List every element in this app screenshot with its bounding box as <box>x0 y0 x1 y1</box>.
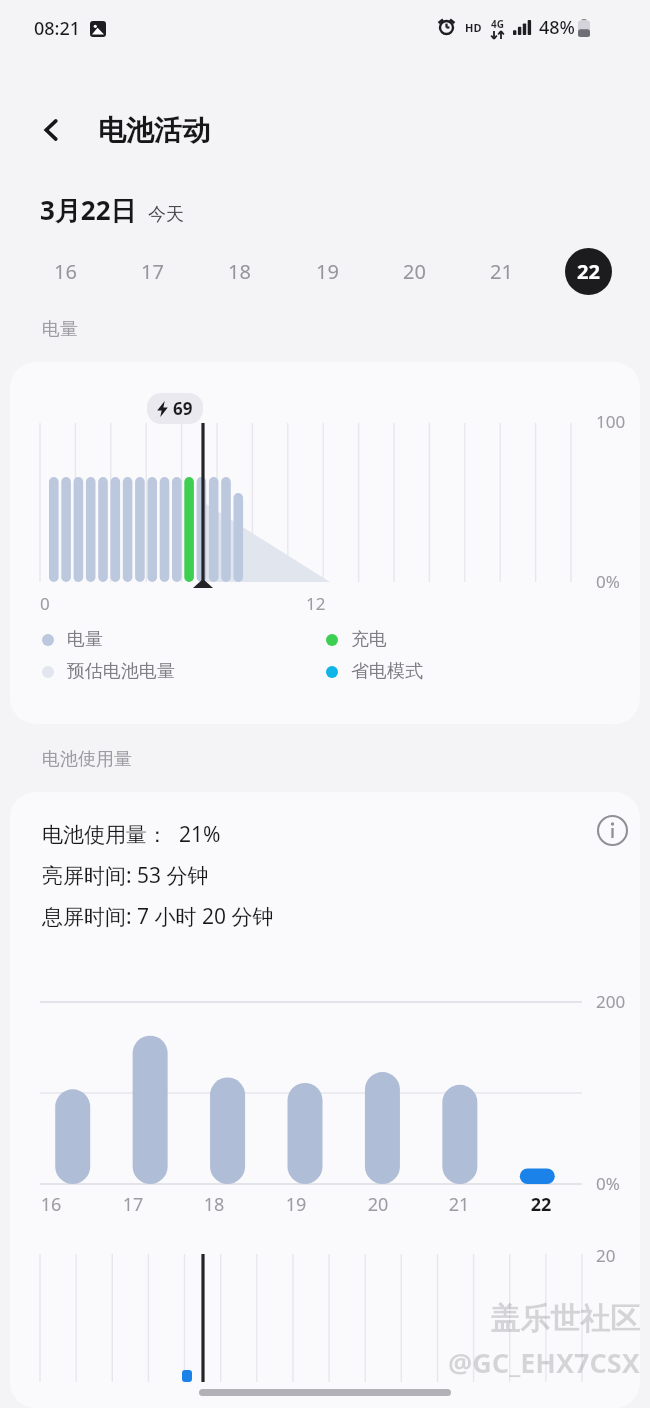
button[interactable]: 21 <box>478 248 525 295</box>
staticText: 17 <box>116 1192 150 1217</box>
staticText: 19 <box>316 258 339 285</box>
staticText: 充电 <box>351 628 387 651</box>
staticText: 20 <box>361 1192 395 1217</box>
staticText: 电池使用量 <box>42 748 132 771</box>
button[interactable]: 17 <box>129 248 176 295</box>
button[interactable]: 返回 <box>26 104 78 156</box>
staticText: 0% <box>596 1172 620 1195</box>
button[interactable]: 22 <box>565 248 612 295</box>
staticText: 20 <box>596 1244 616 1267</box>
staticText: 12 <box>306 592 326 615</box>
staticText: 20 <box>403 258 426 285</box>
staticText: 电池活动 <box>98 113 210 148</box>
button[interactable]: 信息 <box>588 806 636 854</box>
button[interactable]: 20 <box>391 248 438 295</box>
staticText: 100 <box>596 410 626 433</box>
staticText: 16 <box>54 258 77 285</box>
staticText: 19 <box>279 1192 313 1217</box>
staticText: 盖乐世社区 <box>490 1300 640 1338</box>
button[interactable]: 16 <box>42 248 89 295</box>
staticText: 亮屏时间: 53 分钟 <box>42 861 209 890</box>
staticText: 69 <box>173 397 193 420</box>
button[interactable]: 69 <box>10 362 640 724</box>
staticText: 息屏时间: 7 小时 20 分钟 <box>42 902 274 931</box>
staticText: 22 <box>577 258 600 285</box>
button[interactable]: 18 <box>216 248 263 295</box>
staticText: 08:21 <box>34 16 81 41</box>
staticText: 今天 <box>148 203 184 226</box>
staticText: 21 <box>490 258 513 285</box>
staticText: 4G <box>491 17 504 31</box>
staticText: 电池使用量： 21% <box>42 820 221 849</box>
staticText: 18 <box>197 1192 231 1217</box>
staticText: 预估电池电量 <box>67 660 175 683</box>
staticText: 22 <box>524 1192 558 1217</box>
staticText: 21 <box>442 1192 476 1217</box>
staticText: 电量 <box>67 628 103 651</box>
staticText: 省电模式 <box>351 660 423 683</box>
staticText: 电量 <box>42 318 78 341</box>
staticText: 17 <box>141 258 164 285</box>
staticText: 200 <box>596 990 626 1013</box>
staticText: 16 <box>34 1192 68 1217</box>
staticText: HD <box>465 20 482 35</box>
button[interactable]: 19 <box>304 248 351 295</box>
staticText: 3月22日 <box>40 192 137 228</box>
staticText: 0 <box>40 592 50 615</box>
staticText: 48% <box>539 15 575 40</box>
staticText: @GC_EHX7CSX <box>448 1344 640 1381</box>
staticText: 0% <box>596 570 620 593</box>
staticText: 18 <box>228 258 251 285</box>
